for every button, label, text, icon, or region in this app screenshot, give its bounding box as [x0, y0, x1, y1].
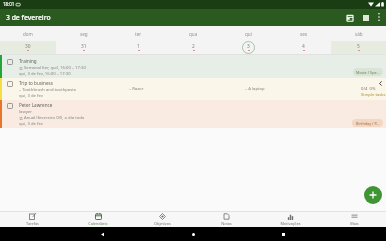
button[interactable]: qui: [221, 26, 276, 55]
staticText: ter: [135, 31, 142, 37]
staticText: sex: [300, 31, 308, 37]
staticText: Motivações: [280, 221, 301, 226]
button[interactable]: Adicionar: [364, 186, 382, 204]
staticText: lawyer: [19, 109, 32, 115]
staticText: 3: [247, 43, 250, 50]
staticText: Tarefas: [26, 221, 39, 226]
other: Início: [191, 232, 196, 237]
button[interactable]: Trip to business: [0, 78, 386, 100]
staticText: Training: [19, 58, 37, 64]
staticText: sáb: [355, 31, 363, 37]
staticText: 18:01: [3, 1, 15, 7]
staticText: qui, 3 de fev: [19, 93, 43, 99]
button[interactable]: Expandir: [376, 79, 384, 87]
staticText: seg: [80, 31, 88, 37]
staticText: 2: [192, 43, 195, 50]
staticText: Movie / Spe…: [356, 70, 380, 75]
staticText: Mais: [350, 221, 359, 226]
staticText: 31: [81, 43, 87, 50]
button[interactable]: Mais: [322, 212, 386, 227]
staticText: Birthday / P…: [356, 121, 380, 126]
staticText: qui: [245, 31, 252, 37]
button[interactable]: sex: [276, 26, 331, 55]
staticText: qui, 3 de fev: [19, 121, 43, 127]
staticText: 1: [137, 43, 140, 50]
other: Voltar: [100, 232, 105, 237]
button[interactable]: Hoje: [341, 9, 358, 26]
button[interactable]: Objetivos: [130, 212, 194, 227]
staticText: 0/4 0%: [361, 86, 376, 92]
button[interactable]: Tarefas: [0, 212, 65, 227]
button[interactable]: Birthday / P…: [352, 119, 383, 127]
button[interactable]: Notas: [194, 212, 258, 227]
button[interactable]: Mais opções: [371, 9, 386, 24]
button[interactable]: qua: [166, 26, 221, 55]
button[interactable]: sáb: [331, 26, 386, 55]
staticText: Anual (fevereiro 03), o dia todo: [24, 115, 85, 121]
staticText: Notas: [221, 221, 232, 226]
staticText: dom: [23, 31, 33, 37]
staticText: Trip to business: [19, 80, 53, 86]
button[interactable]: dom: [0, 26, 56, 55]
button[interactable]: Visualização: [357, 9, 374, 26]
staticText: 4: [302, 43, 305, 50]
staticText: qua: [189, 31, 198, 37]
staticText: qui, 3 de fev, 16:00 – 17:30: [19, 71, 71, 77]
staticText: 5: [357, 43, 360, 50]
staticText: Simple tasks: [361, 92, 386, 98]
staticText: Semanal (ter, qui), 16:00 – 17:30: [24, 65, 86, 71]
staticText: – Razor: [129, 86, 144, 92]
staticText: 3 de fevereiro: [6, 13, 51, 22]
button[interactable]: Movie / Spe…: [353, 68, 383, 76]
staticText: 30: [25, 43, 31, 50]
button[interactable]: Motivações: [258, 212, 322, 227]
staticText: Peter Lawrence: [19, 102, 53, 108]
button[interactable]: ter: [111, 26, 166, 55]
button[interactable]: Training: [0, 55, 386, 78]
other: Recentes: [281, 232, 286, 237]
staticText: – Toothbrush and toothpaste: [19, 87, 77, 93]
button[interactable]: seg: [56, 26, 111, 55]
button[interactable]: Peter Lawrence: [0, 100, 386, 128]
staticText: Calendário: [88, 221, 108, 226]
staticText: – A laptop: [245, 86, 265, 92]
staticText: Objetivos: [154, 221, 171, 226]
button[interactable]: Calendário: [65, 212, 130, 227]
